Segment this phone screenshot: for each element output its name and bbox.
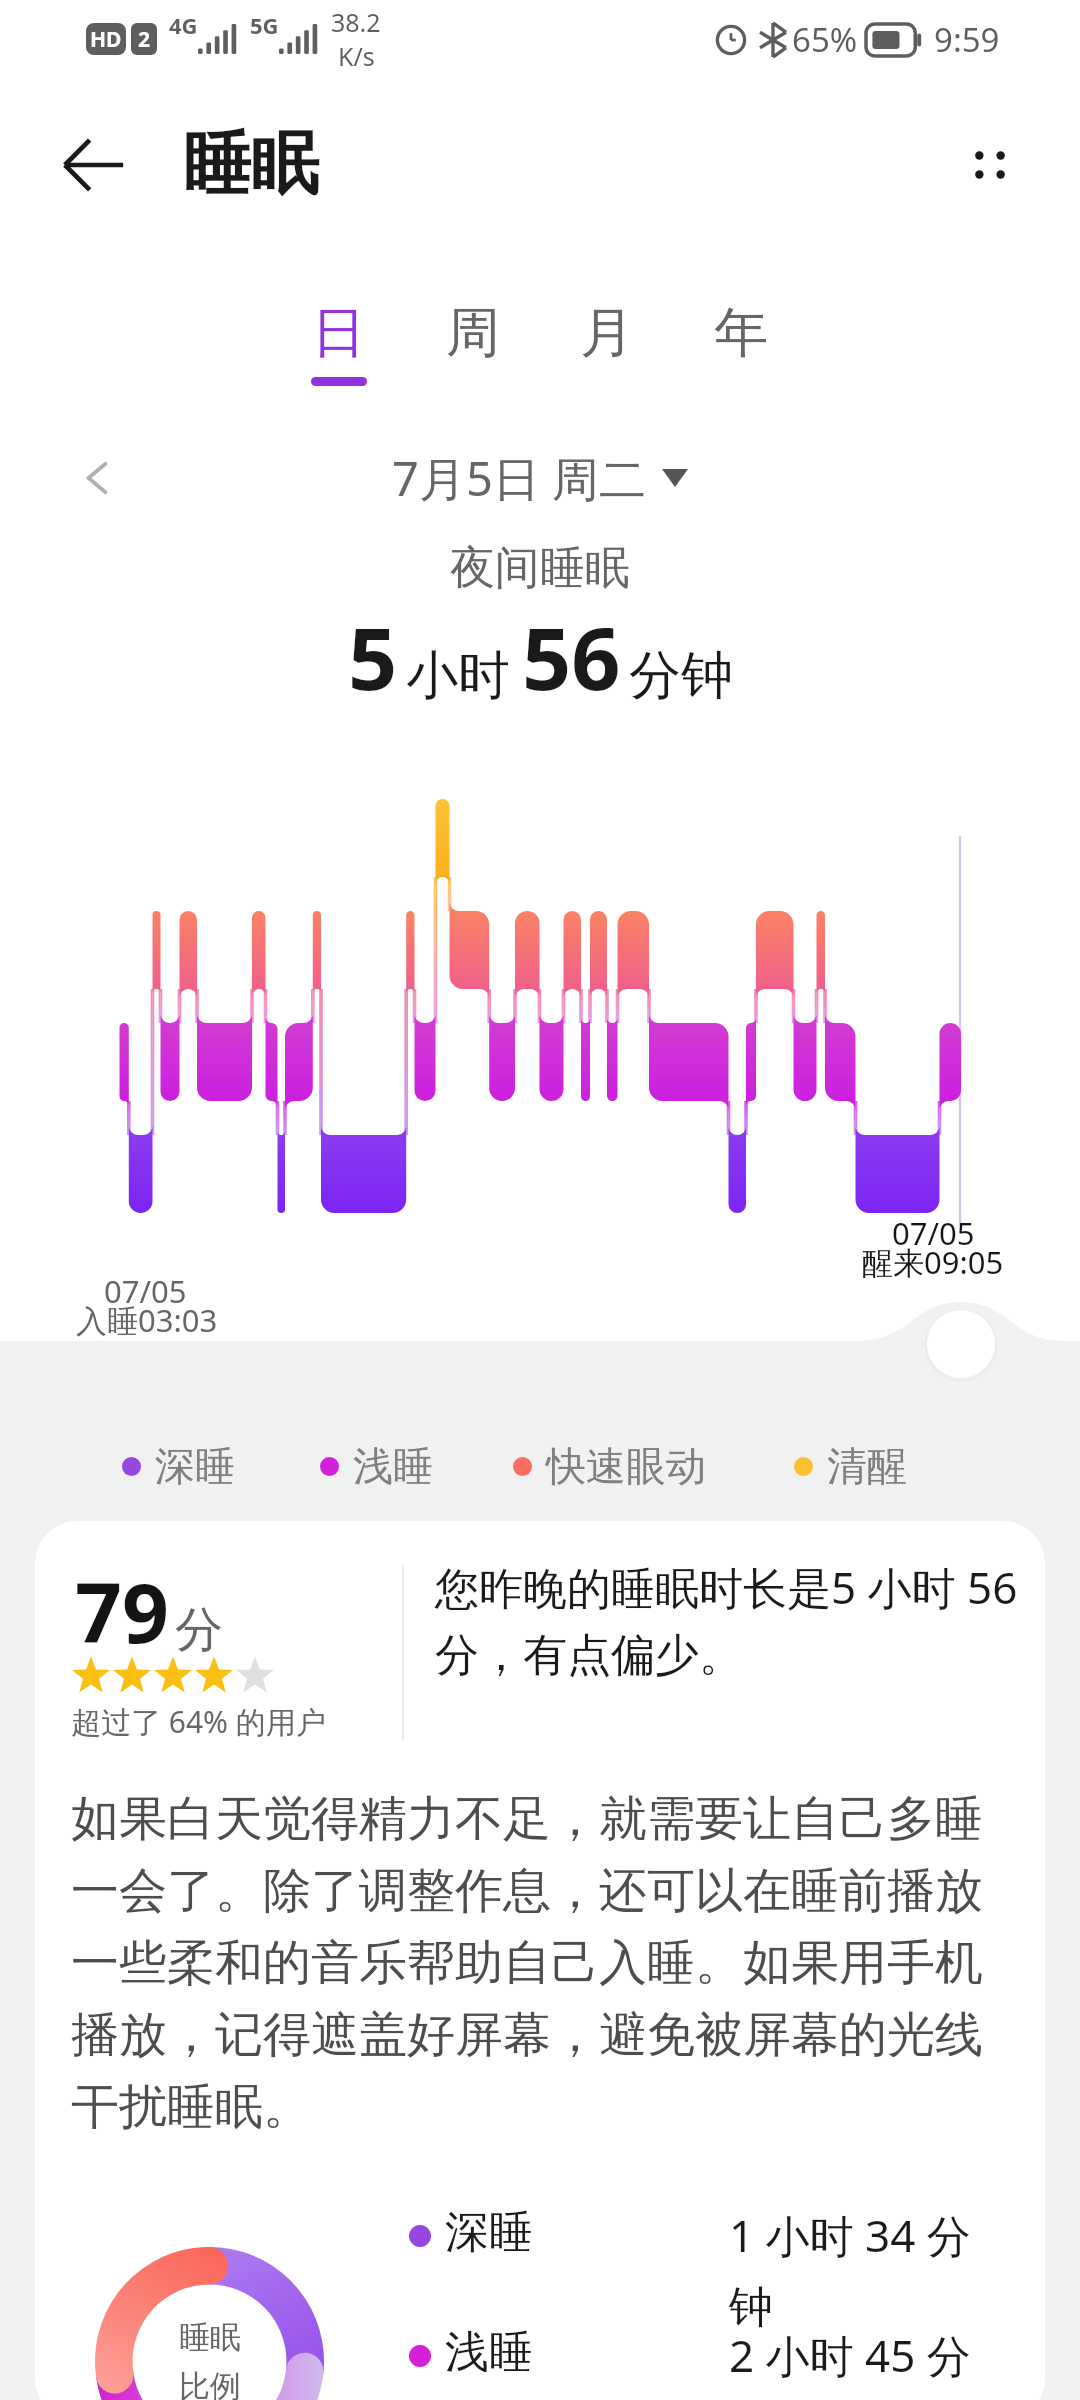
staticText: 如果白天觉得精力不足，就需要让自己多睡一会了。除了调整作息，还可以在睡前播放一些… xyxy=(71,1789,1011,2137)
staticText: 小时 xyxy=(406,643,510,709)
staticText: 浅睡 xyxy=(445,2325,729,2380)
button[interactable]: Share xyxy=(927,1310,995,1378)
staticText: 2 xyxy=(138,25,151,54)
staticText: 深睡 xyxy=(445,2205,729,2260)
staticText: 分 xyxy=(175,1600,223,1660)
button[interactable]: 周 xyxy=(445,299,501,377)
button[interactable]: 7月5日 周二 xyxy=(392,446,688,510)
staticText: 超过了 64% 的用户 xyxy=(71,1701,326,1742)
staticText: 5 xyxy=(348,598,398,715)
staticText: 9:59 xyxy=(934,17,1000,62)
staticText: 分钟 xyxy=(629,643,733,709)
button[interactable]: More options xyxy=(950,125,1030,205)
staticText: 比例 xyxy=(179,2367,241,2400)
button[interactable]: 快速眼动 xyxy=(513,1441,706,1491)
staticText: 月 xyxy=(580,299,634,367)
staticText: 夜间睡眠 xyxy=(0,540,1080,597)
button[interactable]: Previous day xyxy=(62,443,132,513)
button[interactable]: 清醒 xyxy=(794,1441,907,1491)
staticText: 您昨晚的睡眠时长是5 小时 56 分，有点偏少。 xyxy=(435,1557,1035,1683)
staticText: 日 xyxy=(312,299,366,367)
staticText: 65% xyxy=(792,17,858,62)
staticText: 56 xyxy=(522,598,621,715)
button[interactable]: 浅睡 xyxy=(320,1441,433,1491)
staticText: 38.2 xyxy=(331,5,381,39)
staticText: 睡眠 xyxy=(179,2318,241,2357)
staticText: 浅睡 xyxy=(353,1441,433,1491)
staticText: HD xyxy=(90,25,122,54)
staticText: 79 xyxy=(75,1555,169,1667)
staticText: 快速眼动 xyxy=(546,1441,706,1491)
button[interactable]: 日 xyxy=(311,299,367,386)
staticText: 深睡 xyxy=(155,1441,235,1491)
button[interactable]: Back xyxy=(54,125,134,205)
staticText: K/s xyxy=(338,39,375,73)
staticText: 7月5日 周二 xyxy=(392,446,646,510)
staticText: 2 小时 45 分钟 xyxy=(729,2325,981,2400)
staticText: 4G xyxy=(169,10,198,40)
staticText: 5G xyxy=(250,10,279,40)
button[interactable]: 月 xyxy=(579,299,635,377)
staticText: 1 小时 34 分钟 xyxy=(729,2205,981,2335)
staticText: 年 xyxy=(714,299,768,367)
button[interactable]: 年 xyxy=(713,299,769,377)
staticText: 睡眠 xyxy=(183,122,319,208)
staticText: 07/05 xyxy=(104,1270,187,1312)
staticText: 07/05 xyxy=(892,1212,975,1254)
staticText: 清醒 xyxy=(827,1441,907,1491)
staticText: 入睡03:03 xyxy=(76,1299,218,1341)
staticText: 周 xyxy=(446,299,500,367)
staticText: 醒来09:05 xyxy=(862,1241,1004,1283)
button[interactable]: 深睡 xyxy=(122,1441,235,1491)
